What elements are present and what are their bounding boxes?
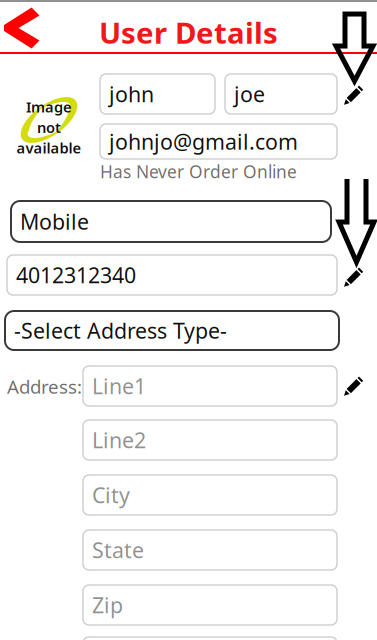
staticText: State xyxy=(92,536,144,564)
button[interactable]: Mobile xyxy=(11,201,331,242)
staticText: not xyxy=(37,117,61,137)
staticText: Address: xyxy=(7,374,82,399)
staticText: 4012312340 xyxy=(16,261,136,289)
button[interactable]: Edit address xyxy=(344,377,363,396)
button[interactable]: Edit phone xyxy=(344,268,363,287)
button[interactable]: Back xyxy=(0,5,44,51)
staticText: Has Never Order Online xyxy=(100,160,297,183)
staticText: available xyxy=(16,138,81,157)
staticText: john xyxy=(109,80,154,108)
staticText: Mobile xyxy=(20,207,89,236)
staticText: City xyxy=(92,481,130,509)
staticText: joe xyxy=(234,80,265,108)
button[interactable]: Edit name xyxy=(344,86,363,105)
staticText: Image xyxy=(26,97,72,116)
staticText: User Details xyxy=(99,13,278,52)
staticText: Zip xyxy=(92,591,123,619)
staticText: johnjo@gmail.com xyxy=(109,127,298,156)
button[interactable]: -Select Address Type- xyxy=(5,311,339,350)
staticText: Line1 xyxy=(92,372,146,400)
staticText: Line2 xyxy=(92,426,146,454)
staticText: -Select Address Type- xyxy=(14,316,227,345)
